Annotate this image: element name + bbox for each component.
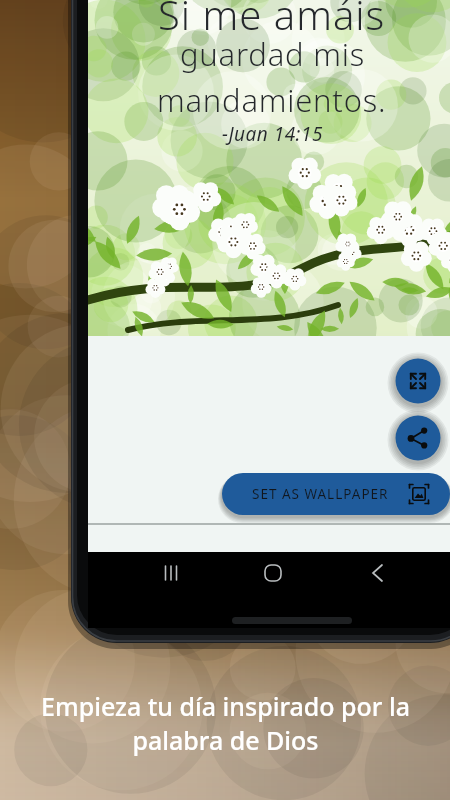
staticText: Si me amáis [158,0,386,41]
staticText: Empieza tu día inspirado por la palabra … [41,689,410,758]
button[interactable]: Share [396,416,441,461]
staticText: guardad mis [180,33,365,75]
button[interactable]: Home [245,552,305,601]
button[interactable]: Recents [141,552,201,601]
staticText: SET AS WALLPAPER [252,485,389,503]
button[interactable]: View fullscreen [396,359,441,404]
staticText: mandamientos. [157,79,387,121]
button[interactable]: Set as wallpaper [222,473,450,515]
button[interactable]: Back [347,552,407,601]
staticText: -Juan 14:15 [222,121,323,147]
